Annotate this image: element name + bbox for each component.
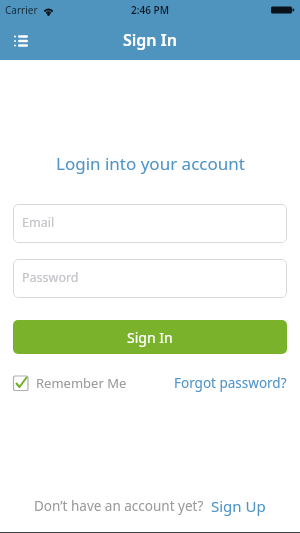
staticText: Forgot password?	[174, 374, 287, 392]
staticText: Sign Up	[211, 496, 266, 516]
staticText: Carrier	[5, 3, 38, 17]
staticText: Email	[22, 214, 55, 231]
staticText: Sign In	[127, 328, 173, 347]
button[interactable]: Forgot password?	[174, 374, 287, 392]
button[interactable]	[8, 27, 34, 53]
button[interactable]: Remember Me	[13, 374, 127, 392]
button[interactable]: Sign In	[13, 320, 287, 354]
staticText: Password	[22, 269, 79, 286]
button[interactable]: Email	[13, 204, 287, 243]
staticText: Sign In	[123, 29, 177, 51]
staticText: Don’t have an account yet?	[34, 497, 204, 515]
staticText: 2:46 PM	[131, 3, 169, 17]
staticText: Remember Me	[36, 374, 127, 392]
button[interactable]: Sign Up	[211, 496, 266, 516]
button[interactable]: Password	[13, 259, 287, 298]
staticText: Login into your account	[56, 152, 245, 175]
